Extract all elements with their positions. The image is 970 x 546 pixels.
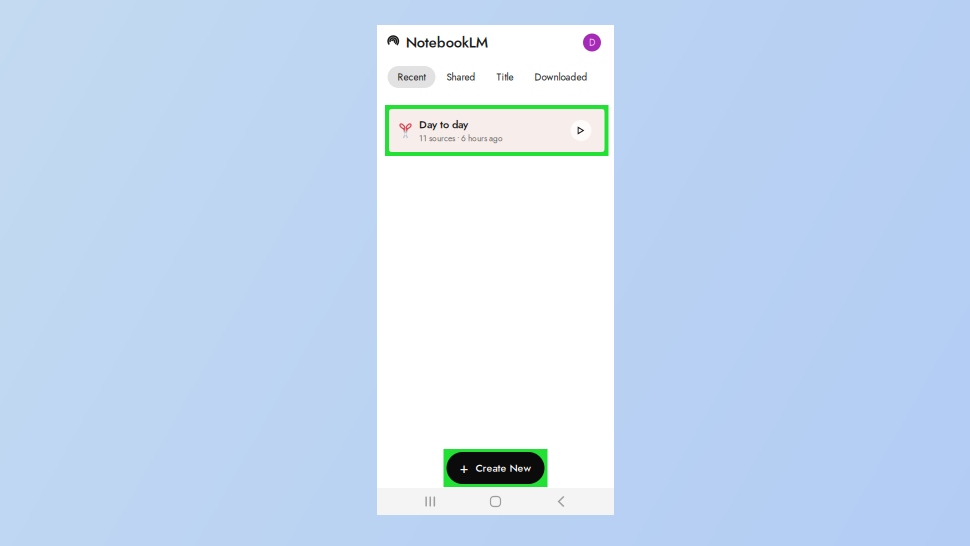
button[interactable]: Home [483, 493, 507, 509]
staticText: Shared [446, 70, 475, 84]
staticText: Day to day [419, 117, 468, 132]
staticText: Downloaded [534, 70, 587, 84]
staticText: NotebookLM [406, 32, 488, 53]
button[interactable]: Downloaded [534, 66, 587, 88]
staticText: Title [496, 70, 513, 84]
button[interactable]: Account [583, 33, 601, 51]
staticText: D [589, 36, 595, 49]
button[interactable]: Day to day [377, 88, 614, 156]
button[interactable]: Recent apps [418, 493, 442, 509]
staticText: Recent [397, 70, 425, 84]
staticText: 11 sources • 6 hours ago [419, 132, 503, 144]
button[interactable]: Shared [446, 66, 475, 88]
button[interactable]: Title [496, 66, 513, 88]
staticText: Create New [475, 460, 531, 476]
button[interactable]: + [443, 449, 547, 487]
button[interactable]: Recent [387, 66, 435, 88]
button[interactable]: Back [549, 493, 573, 509]
staticText: + [459, 457, 468, 479]
